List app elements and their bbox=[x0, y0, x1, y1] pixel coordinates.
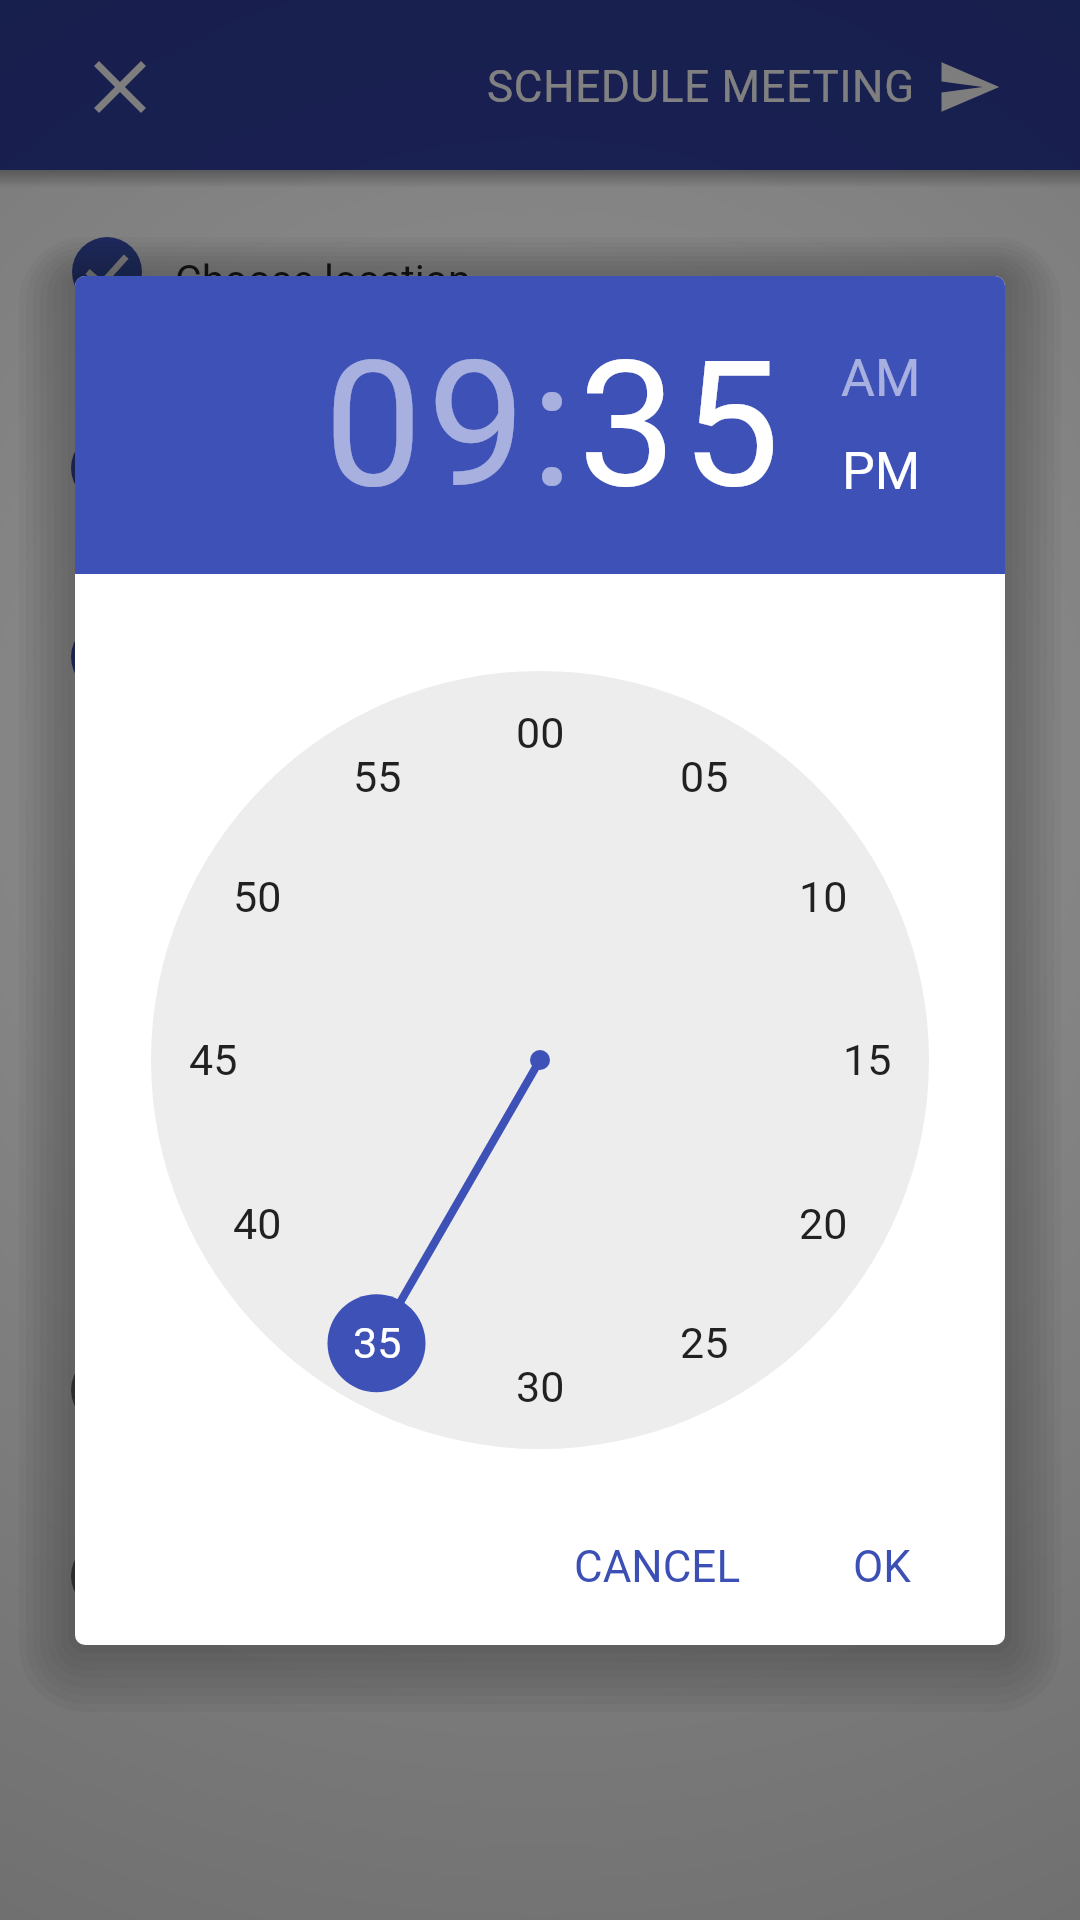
staticText: 35 bbox=[353, 1318, 402, 1368]
button[interactable]: 00 bbox=[495, 703, 585, 763]
button[interactable]: 30 bbox=[495, 1357, 585, 1417]
staticText: OK bbox=[853, 1541, 911, 1593]
staticText: 50 bbox=[233, 872, 282, 922]
staticText: AM bbox=[841, 348, 921, 409]
staticText: 55 bbox=[353, 752, 402, 802]
button[interactable]: 05 bbox=[659, 747, 749, 807]
button[interactable]: 35 bbox=[332, 1313, 422, 1373]
button[interactable]: 45 bbox=[168, 1030, 258, 1090]
staticText: 20 bbox=[799, 1199, 848, 1249]
staticText: 25 bbox=[680, 1318, 729, 1368]
staticText: 09:35 bbox=[324, 323, 785, 528]
staticText: 40 bbox=[233, 1199, 282, 1249]
staticText: Choose location bbox=[175, 256, 471, 304]
staticText: 10 bbox=[799, 872, 848, 922]
button[interactable]: AM bbox=[841, 348, 921, 409]
button[interactable]: 55 bbox=[332, 747, 422, 807]
button[interactable]: 50 bbox=[212, 867, 302, 927]
button[interactable] bbox=[99, 66, 141, 108]
button[interactable]: CANCEL bbox=[547, 1527, 767, 1607]
button[interactable]: 15 bbox=[822, 1030, 912, 1090]
staticText: SCHEDULE MEETING bbox=[487, 61, 915, 113]
button[interactable] bbox=[936, 54, 1002, 120]
staticText: 00 bbox=[516, 708, 565, 758]
staticText: 45 bbox=[189, 1035, 238, 1085]
staticText: CANCEL bbox=[574, 1541, 741, 1593]
button[interactable]: PM bbox=[842, 441, 921, 502]
staticText: PM bbox=[842, 441, 921, 502]
staticText: 30 bbox=[516, 1362, 565, 1412]
button[interactable]: 20 bbox=[778, 1194, 868, 1254]
staticText: 05 bbox=[680, 752, 729, 802]
button[interactable]: 25 bbox=[659, 1313, 749, 1373]
staticText: 15 bbox=[843, 1035, 892, 1085]
button[interactable]: 40 bbox=[212, 1194, 302, 1254]
button[interactable]: OK bbox=[792, 1527, 972, 1607]
button[interactable]: 10 bbox=[778, 867, 868, 927]
